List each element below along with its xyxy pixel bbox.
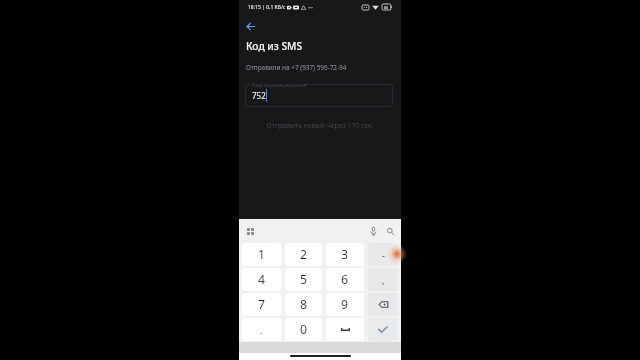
staticText: 3 [341,246,349,263]
staticText: Отправить новый через 170 сек. [239,121,401,130]
button[interactable]: Space [326,318,364,341]
staticText: 9 [341,296,349,313]
staticText: Код из SMS [246,39,303,53]
staticText: 752 [252,90,266,101]
staticText: 5 [300,271,308,288]
button[interactable]: 6 [326,268,364,291]
staticText: 1 [258,246,266,263]
staticText: 18:15 | 0,1 КБ/с [248,4,286,11]
button[interactable]: Keyboard options [243,224,257,238]
staticText: 7 [258,296,266,313]
button[interactable]: Voice input [367,225,379,237]
button[interactable]: 8 [285,293,322,316]
staticText: 8 [300,296,308,313]
button[interactable]: Backspace [368,293,398,316]
button[interactable]: 1 [242,243,281,266]
button[interactable]: - [368,243,398,266]
staticText: - [382,249,385,261]
staticText: Отправили на +7 (937) 596-72-94 [246,63,347,72]
staticText: , [382,274,385,286]
staticText: 0 [300,321,308,338]
staticText: . [260,324,263,336]
button[interactable]: 5 [285,268,322,291]
button[interactable]: 3 [326,243,364,266]
button[interactable]: 4 [242,268,281,291]
button[interactable]: 2 [285,243,322,266]
button[interactable]: . [242,318,281,341]
button[interactable]: , [368,268,398,291]
button[interactable]: Done [368,318,398,341]
staticText: 4 [258,271,266,288]
staticText: 6 [341,271,349,288]
staticText: Код подтверждения [252,81,307,89]
button[interactable]: 9 [326,293,364,316]
staticText: 2 [300,246,308,263]
button[interactable]: Search [384,225,396,237]
staticText: 66 [384,5,389,10]
button[interactable]: 0 [285,318,322,341]
button[interactable]: Код подтверждения [245,84,393,107]
button[interactable]: 7 [242,293,281,316]
button[interactable]: Back [242,18,258,34]
